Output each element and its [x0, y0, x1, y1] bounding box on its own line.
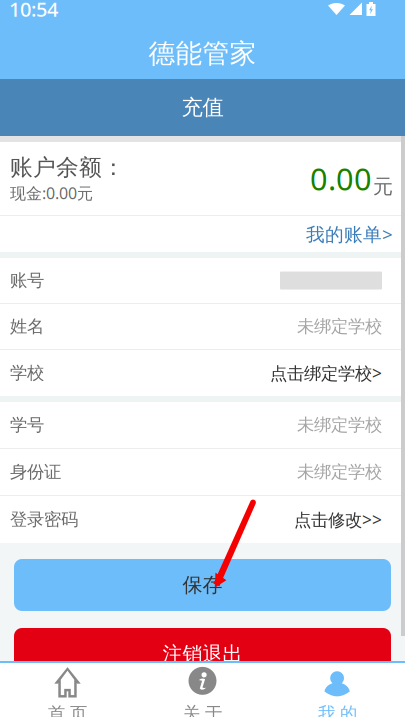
staticText: 登录密码	[10, 509, 78, 530]
staticText: 现金:0.00元	[10, 182, 93, 203]
staticText: 姓名	[10, 316, 44, 337]
staticText: 0.00	[310, 158, 372, 199]
staticText: 未绑定学校	[297, 414, 382, 436]
button[interactable]: 身份证	[0, 449, 405, 496]
staticText: 未绑定学校	[297, 461, 382, 483]
staticText: 关 于	[183, 703, 222, 717]
staticText: 我 的	[318, 703, 357, 717]
button[interactable]: 账号	[0, 258, 405, 304]
button[interactable]: 我的账单>	[0, 216, 405, 252]
staticText: 账户余额：	[10, 153, 125, 181]
staticText: 德能管家	[148, 37, 256, 70]
staticText: 学号	[10, 414, 44, 436]
staticText: 元	[373, 174, 393, 199]
staticText: 账号	[10, 270, 44, 291]
staticText: 充值	[181, 94, 223, 121]
button[interactable]: 姓名	[0, 304, 405, 350]
button[interactable]: 学号	[0, 402, 405, 449]
staticText: 我的账单>	[306, 222, 393, 246]
staticText: 10:54	[9, 0, 58, 22]
button[interactable]: 登录密码	[0, 496, 405, 543]
button[interactable]: 我 的	[270, 663, 405, 717]
button[interactable]: 注销退出	[14, 628, 391, 680]
staticText: 未绑定学校	[297, 316, 382, 337]
staticText: 学校	[10, 362, 44, 384]
button[interactable]: 保存	[14, 559, 391, 611]
staticText: 点击绑定学校>	[270, 361, 382, 384]
button[interactable]: 关 于	[135, 663, 270, 717]
staticText: 点击修改>>	[294, 508, 382, 531]
staticText: 首 页	[48, 703, 87, 717]
button[interactable]: 首 页	[0, 663, 135, 717]
staticText: 保存	[182, 573, 222, 597]
button[interactable]: 学校	[0, 350, 405, 396]
staticText: 注销退出	[162, 642, 242, 666]
staticText: 身份证	[10, 461, 61, 483]
